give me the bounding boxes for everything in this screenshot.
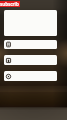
- button[interactable]: Play: [4, 71, 57, 81]
- button[interactable]: subscribe: [0, 1, 20, 7]
- button[interactable]: Gallery: [4, 55, 57, 65]
- staticText: subscribe: [0, 1, 20, 7]
- button[interactable]: Document: [4, 40, 57, 49]
- button[interactable]: [4, 10, 57, 36]
